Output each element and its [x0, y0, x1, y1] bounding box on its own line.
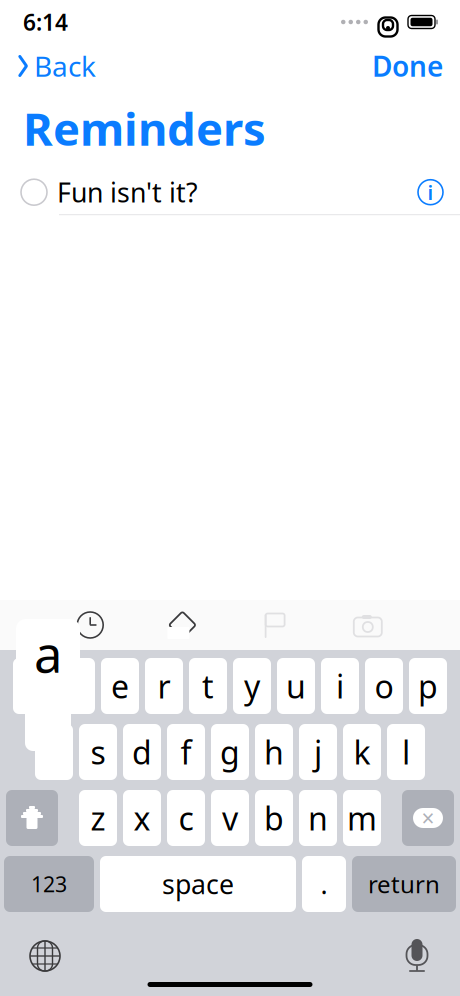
staticText: a — [34, 619, 62, 687]
staticText: s — [90, 731, 105, 773]
staticText: 6:14 — [23, 7, 68, 37]
staticText: g — [220, 731, 240, 773]
staticText: e — [111, 665, 129, 707]
staticText: i — [336, 665, 344, 707]
staticText: Reminders — [23, 98, 266, 158]
button[interactable]: l — [387, 724, 425, 780]
button[interactable]: r — [145, 658, 183, 714]
button[interactable]: f — [167, 724, 205, 780]
button[interactable]: g — [211, 724, 249, 780]
button[interactable]: Shift — [6, 790, 58, 846]
staticText: v — [222, 797, 238, 839]
staticText: z — [90, 797, 105, 839]
button[interactable]: u — [277, 658, 315, 714]
button[interactable]: Reminder details — [400, 173, 460, 211]
button[interactable]: x — [123, 790, 161, 846]
staticText: r — [157, 665, 170, 707]
button[interactable]: Dictate — [403, 939, 431, 973]
button[interactable]: Add photo — [352, 611, 384, 639]
button[interactable]: h — [255, 724, 293, 780]
button[interactable]: Remind me at a time — [76, 611, 104, 639]
staticText: m — [347, 797, 377, 839]
button[interactable]: e — [101, 658, 139, 714]
button[interactable]: y — [233, 658, 271, 714]
button[interactable]: Delete — [402, 790, 454, 846]
staticText: d — [132, 731, 152, 773]
staticText: b — [264, 797, 284, 839]
staticText: u — [286, 665, 306, 707]
button[interactable]: Next keyboard — [29, 940, 61, 972]
button[interactable]: p — [409, 658, 447, 714]
staticText: Back — [34, 47, 96, 85]
button[interactable]: return — [352, 856, 456, 912]
button[interactable]: n — [299, 790, 337, 846]
staticText: space — [162, 866, 234, 902]
button[interactable]: . — [302, 856, 346, 912]
staticText: h — [264, 731, 284, 773]
button[interactable]: Back — [13, 41, 100, 91]
button[interactable]: z — [79, 790, 117, 846]
staticText: n — [308, 797, 328, 839]
button[interactable]: m — [343, 790, 381, 846]
staticText: t — [202, 665, 214, 707]
button[interactable]: d — [123, 724, 161, 780]
button[interactable]: k — [343, 724, 381, 780]
staticText: k — [353, 731, 370, 773]
button[interactable]: j — [299, 724, 337, 780]
staticText: o — [374, 665, 393, 707]
button[interactable]: Done — [368, 41, 447, 91]
staticText: . — [320, 866, 327, 902]
staticText: i — [427, 179, 433, 205]
button[interactable]: v — [211, 790, 249, 846]
staticText: f — [180, 731, 191, 773]
button[interactable]: Remind me at a location — [167, 610, 197, 640]
button[interactable]: s — [79, 724, 117, 780]
staticText: y — [244, 665, 260, 707]
staticText: j — [314, 731, 322, 773]
staticText: × — [421, 803, 434, 833]
staticText: x — [133, 797, 150, 839]
button[interactable]: space — [100, 856, 296, 912]
staticText: Fun isn't it? — [57, 174, 198, 210]
button[interactable]: Flag — [261, 611, 289, 639]
button[interactable]: b — [255, 790, 293, 846]
button[interactable] — [0, 173, 57, 211]
staticText: p — [418, 665, 438, 707]
button[interactable]: 123 — [4, 856, 94, 912]
button[interactable]: o — [365, 658, 403, 714]
staticText: c — [178, 797, 193, 839]
staticText: 123 — [31, 870, 67, 898]
button[interactable]: c — [167, 790, 205, 846]
button[interactable]: t — [189, 658, 227, 714]
button[interactable]: i — [321, 658, 359, 714]
staticText: l — [402, 731, 410, 773]
staticText: return — [368, 868, 440, 900]
staticText: Done — [372, 47, 443, 85]
